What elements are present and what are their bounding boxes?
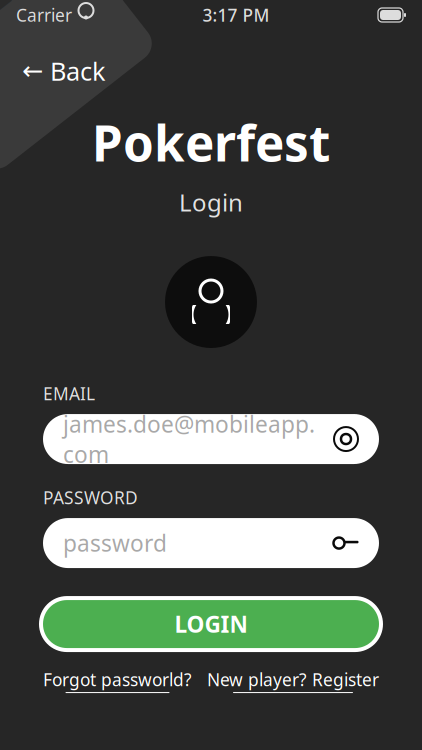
staticText: Carrier (16, 3, 72, 26)
staticText: Pokerfest (92, 110, 330, 175)
staticText: Forgot passworld? (43, 668, 192, 691)
staticText: james.doe@mobileapp.com (63, 409, 315, 469)
button[interactable]: ← (12, 48, 116, 94)
staticText: A (0, 0, 56, 42)
staticText: New player? Register (207, 668, 379, 691)
staticText: LOGIN (174, 609, 247, 639)
staticText: Back (50, 54, 106, 88)
staticText: Login (179, 186, 243, 218)
staticText: 3:17 PM (202, 3, 269, 26)
staticText: PASSWORD (43, 486, 138, 509)
button[interactable]: LOGIN (39, 596, 383, 652)
staticText: password (63, 528, 167, 558)
staticText: ← (22, 56, 43, 85)
button[interactable]: New player? Register (207, 668, 379, 693)
button[interactable]: Forgot passworld? (43, 668, 192, 693)
staticText: EMAIL (43, 382, 95, 405)
